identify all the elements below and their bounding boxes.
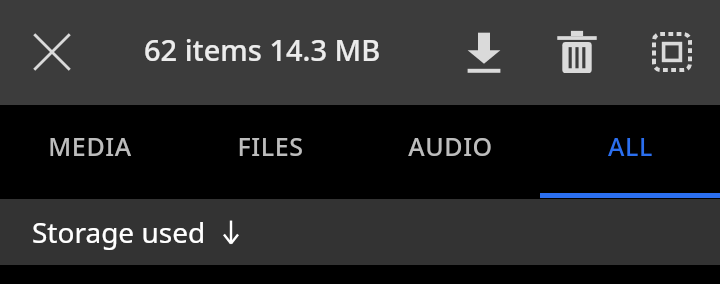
- staticText: FILES: [237, 129, 304, 163]
- staticText: Storage used: [32, 213, 206, 251]
- staticText: 62 items 14.3 MB: [144, 30, 381, 69]
- button[interactable]: ALL: [540, 105, 720, 199]
- staticText: MEDIA: [48, 129, 132, 163]
- staticText: ALL: [608, 129, 653, 163]
- staticText: AUDIO: [408, 129, 493, 163]
- button[interactable]: FILES: [180, 105, 360, 199]
- button[interactable]: Select all: [638, 24, 706, 80]
- button[interactable]: Download: [450, 24, 518, 80]
- button[interactable]: AUDIO: [360, 105, 540, 199]
- button[interactable]: Delete: [543, 24, 611, 80]
- button[interactable]: Storage used: [0, 199, 720, 265]
- button[interactable]: Close: [16, 26, 88, 78]
- button[interactable]: MEDIA: [0, 105, 180, 199]
